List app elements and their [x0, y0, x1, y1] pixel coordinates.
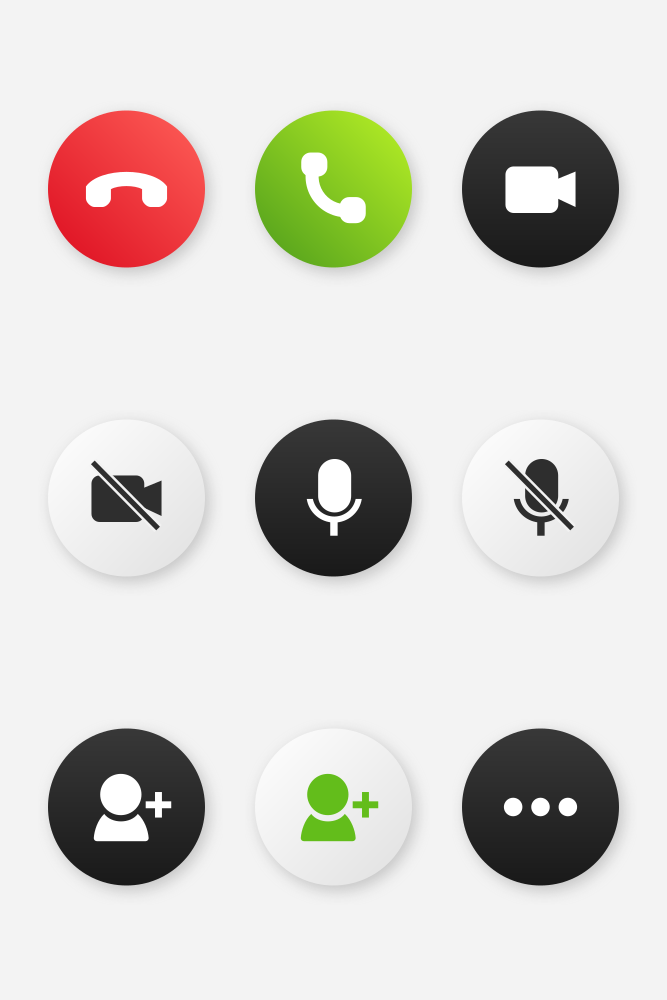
button[interactable]: Microphone on [255, 419, 412, 576]
button[interactable]: Mute microphone [462, 419, 619, 576]
button[interactable]: Turn camera on [462, 110, 619, 267]
button[interactable]: Add participant [255, 728, 412, 885]
button[interactable]: Turn camera off [48, 419, 205, 576]
button[interactable]: Answer call [255, 110, 412, 267]
button[interactable]: Add participant [48, 728, 205, 885]
button[interactable]: More options [462, 728, 619, 885]
button[interactable]: End call [48, 110, 205, 267]
